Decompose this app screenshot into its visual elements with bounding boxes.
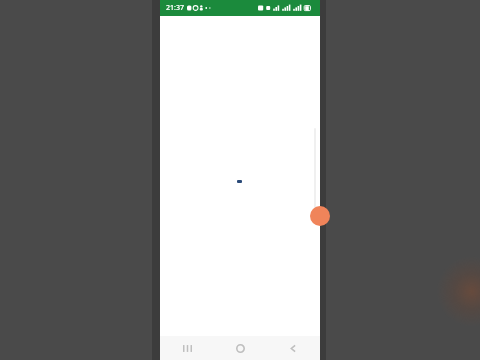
button[interactable]: Home xyxy=(224,336,256,360)
button[interactable]: Recent apps xyxy=(171,336,203,360)
button[interactable]: Back xyxy=(277,336,309,360)
button[interactable]: Add xyxy=(310,206,330,226)
staticText: 21:37 xyxy=(166,3,184,13)
